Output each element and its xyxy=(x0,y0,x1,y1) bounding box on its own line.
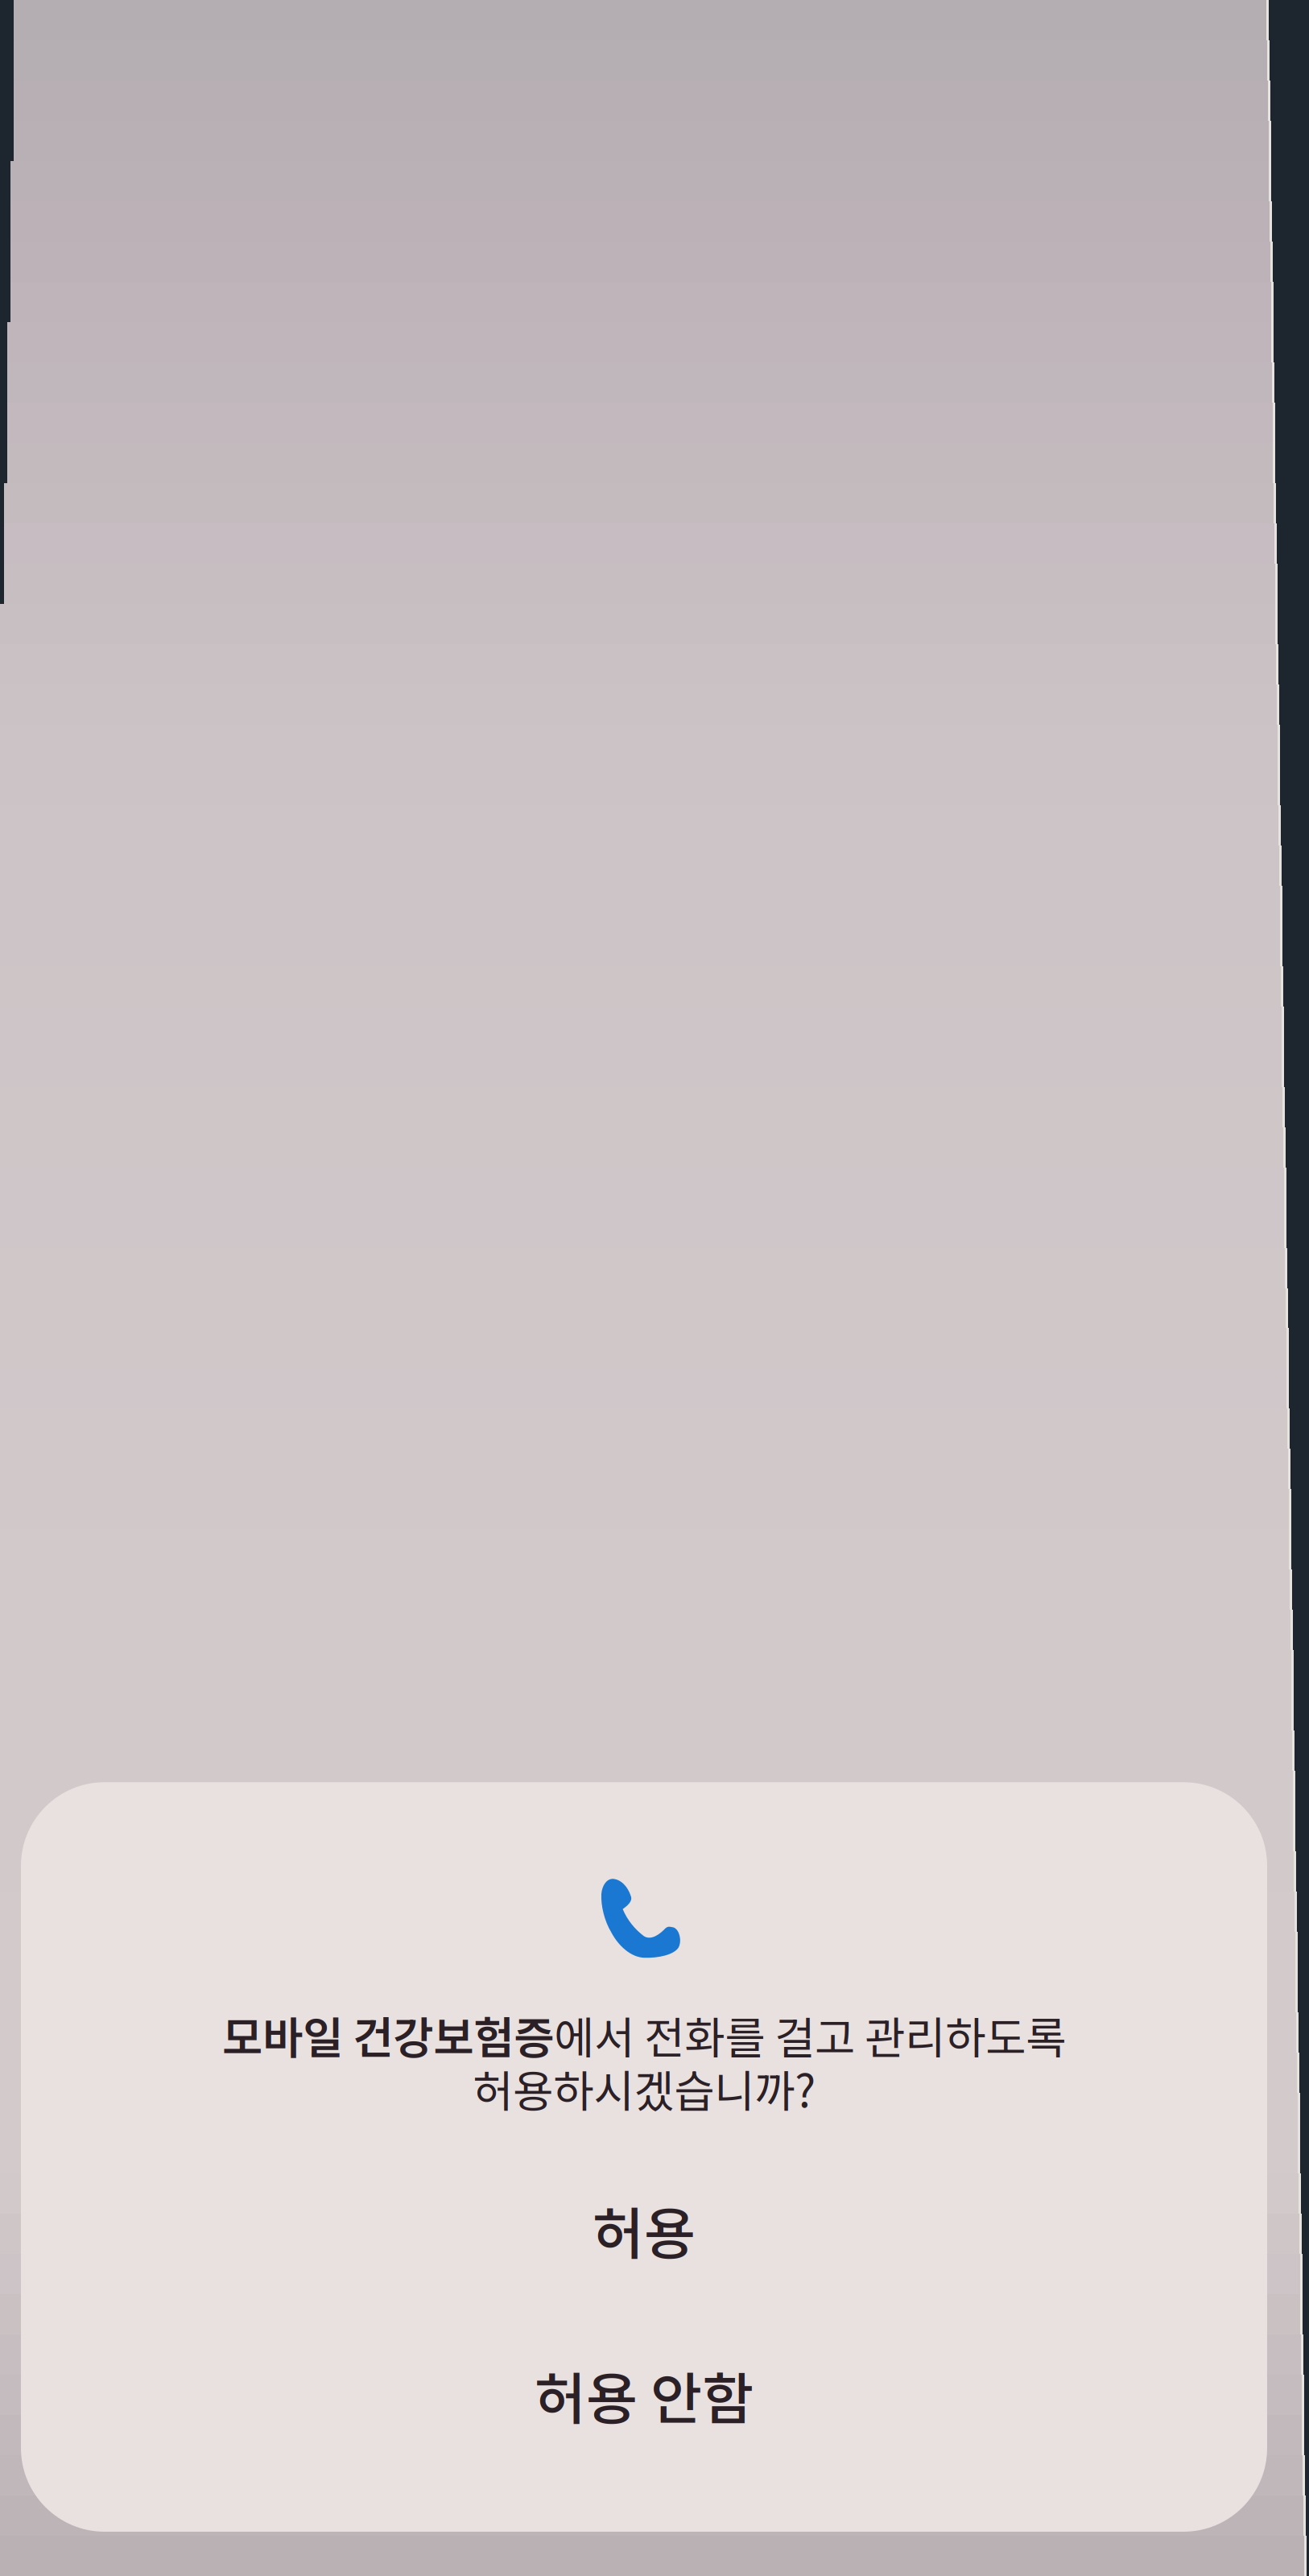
staticText: 허용 안함 xyxy=(535,2354,754,2435)
button[interactable]: 허용 안함 xyxy=(21,2355,1267,2435)
staticText: 모바일 건강보험증에서 전화를 걸고 관리하도록 허용하시겠습니까? xyxy=(222,2004,1066,2119)
button[interactable]: 허용 xyxy=(21,2189,1267,2270)
staticText: 허용 xyxy=(593,2189,696,2270)
